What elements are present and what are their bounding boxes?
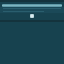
button[interactable]: [2, 4, 62, 7]
button[interactable]: Primary action: [30, 14, 34, 18]
